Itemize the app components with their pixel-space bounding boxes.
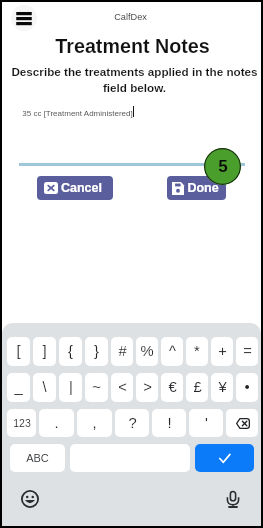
button[interactable]: [: [7, 337, 30, 366]
button[interactable]: {: [59, 337, 82, 366]
button[interactable]: }: [85, 337, 108, 366]
button[interactable]: _: [7, 373, 30, 402]
staticText: [: [16, 343, 21, 360]
button[interactable]: ^: [161, 337, 183, 366]
staticText: ^: [169, 343, 176, 360]
staticText: ?: [128, 415, 137, 432]
staticText: {: [68, 343, 73, 360]
button[interactable]: |: [59, 373, 82, 402]
staticText: =: [243, 343, 252, 360]
button[interactable]: %: [136, 337, 158, 366]
staticText: £: [193, 379, 202, 396]
button[interactable]: ABC: [10, 444, 65, 472]
staticText: %: [140, 343, 154, 360]
button[interactable]: Emoji keyboard: [21, 490, 39, 508]
staticText: *: [194, 343, 200, 360]
staticText: •: [244, 379, 250, 396]
staticText: ,: [92, 415, 97, 432]
button[interactable]: >: [136, 373, 158, 402]
staticText: 5: [218, 157, 228, 176]
staticText: }: [94, 343, 99, 360]
button[interactable]: •: [236, 373, 258, 402]
button[interactable]: ]: [33, 337, 56, 366]
staticText: +: [218, 343, 227, 360]
staticText: |: [69, 379, 73, 396]
button[interactable]: ?: [115, 409, 149, 437]
button[interactable]: !: [152, 409, 186, 437]
staticText: _: [14, 379, 23, 396]
staticText: <: [118, 379, 127, 396]
button[interactable]: Voice input: [224, 490, 242, 508]
button[interactable]: 123: [7, 409, 36, 437]
button[interactable]: ¥: [211, 373, 233, 402]
staticText: Treatment Notes: [3, 35, 262, 57]
staticText: >: [143, 379, 152, 396]
staticText: .: [54, 415, 59, 432]
staticText: #: [118, 343, 127, 360]
staticText: Done: [187, 181, 219, 195]
staticText: Cancel: [61, 181, 102, 195]
button[interactable]: Done: [167, 176, 226, 200]
button[interactable]: Enter: [195, 444, 254, 472]
button[interactable]: <: [111, 373, 133, 402]
staticText: ~: [92, 379, 101, 396]
staticText: !: [167, 415, 172, 432]
button[interactable]: =: [236, 337, 258, 366]
button[interactable]: Cancel: [37, 176, 113, 200]
button[interactable]: #: [111, 337, 133, 366]
button[interactable]: *: [186, 337, 208, 366]
button[interactable]: ,: [77, 409, 112, 437]
button[interactable]: ': [189, 409, 223, 437]
staticText: Describe the treatments applied in the n…: [5, 65, 263, 94]
staticText: ABC: [26, 452, 49, 464]
button[interactable]: Open navigation menu: [11, 5, 37, 31]
button[interactable]: £: [186, 373, 208, 402]
button[interactable]: €: [161, 373, 183, 402]
button[interactable]: ~: [85, 373, 108, 402]
button[interactable]: \: [33, 373, 56, 402]
staticText: ¥: [218, 379, 227, 396]
staticText: 35 cc [Treatment Administered]: [22, 109, 133, 118]
staticText: CalfDex: [93, 12, 168, 22]
staticText: 123: [13, 417, 31, 429]
button[interactable]: +: [211, 337, 233, 366]
button[interactable]: Backspace: [226, 409, 258, 437]
staticText: ]: [42, 343, 47, 360]
staticText: ': [205, 415, 208, 432]
button[interactable]: .: [39, 409, 74, 437]
staticText: €: [168, 379, 177, 396]
staticText: \: [42, 379, 47, 396]
